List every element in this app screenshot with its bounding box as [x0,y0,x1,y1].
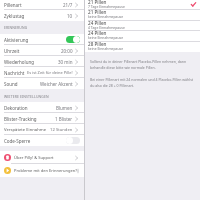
button[interactable]: Aktivierung [0,34,84,45]
button[interactable]: Probleme mit den Erinnerungen? [0,164,84,177]
staticText: Wiederholung [4,59,35,65]
button[interactable]: Code-Sperre [0,135,84,146]
button[interactable]: Zyklustag [0,10,84,21]
staticText: keine Einnahmepause [88,46,124,51]
button[interactable]: Wiederholung [0,56,84,67]
staticText: Nachricht [4,70,25,76]
staticText: Verspätete Einnahme [4,127,47,133]
button[interactable]: 28 Pillen [85,42,200,52]
staticText: 21/7 [63,2,73,8]
staticText: Es ist Zeit für deine Pille! [27,70,73,75]
staticText: Pillenart [4,2,22,8]
button[interactable]: Dekoration [0,102,84,113]
staticText: Uhrzeit [4,48,20,54]
staticText: 10 [67,13,73,19]
staticText: 4 Tage Einnahmepause [88,25,125,30]
staticText: 24 Pillen [88,20,107,26]
staticText: ERINNERUNG [4,25,28,30]
button[interactable]: Eingeschaltet [66,36,80,43]
button[interactable]: Blister-Tracking [0,113,84,124]
button[interactable]: Pillenart [0,0,84,10]
staticText: Blister-Tracking [4,116,37,122]
button[interactable]: Über Pilly! & Support [0,151,84,164]
staticText: 28 Pillen [88,41,107,47]
staticText: 21 Pillen [88,9,107,15]
staticText: Blumen [56,105,73,111]
staticText: keine Einnahmepause [88,14,124,19]
staticText: Probleme mit den Erinnerungen? [14,168,78,174]
staticText: 20:00 [61,48,73,54]
staticText: Solltest du in deiner Pillenart Placebo-… [90,59,196,88]
button[interactable]: 24 Pillen [85,31,200,42]
button[interactable]: Verspätete Einnahme [0,124,84,135]
staticText: WEITERE EINSTELLUNGEN [4,94,49,99]
staticText: Dekoration [4,105,28,111]
button[interactable]: Ausgeschaltet [66,137,80,144]
staticText: 7 Tage Einnahmepause [88,4,125,9]
staticText: 12 Stunden [50,127,73,133]
staticText: 30 min [58,59,73,65]
staticText: Aktivierung [4,37,29,43]
button[interactable]: 21 Pillen [85,0,200,10]
button[interactable]: Nachricht [0,67,84,78]
staticText: keine Einnahmepause [88,35,124,40]
button[interactable]: Uhrzeit [0,45,84,56]
other: Ausgewählt [191,2,196,7]
staticText: Über Pilly! & Support [14,155,54,161]
staticText: 1 Blister [55,116,73,122]
staticText: 24 Pillen [88,30,107,36]
staticText: Sound [4,81,18,87]
button[interactable]: 24 Pillen [85,21,200,31]
staticText: Code-Sperre [4,138,31,144]
staticText: 21 Pillen [88,0,107,5]
staticText: Zyklustag [4,13,25,19]
staticText: Weicher Akzent [40,81,73,87]
button[interactable]: 21 Pillen [85,10,200,21]
button[interactable]: Sound [0,78,84,89]
